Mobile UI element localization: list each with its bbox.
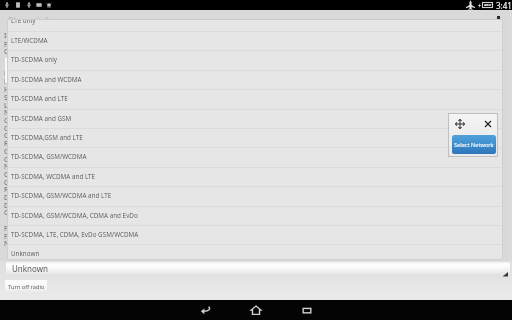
staticText: TD-SCDMA and WCDMA (11, 75, 82, 84)
button[interactable]: Close (483, 119, 493, 129)
staticText: GSM cell (4, 155, 33, 165)
button[interactable]: Move panel (455, 119, 465, 129)
staticText: Ping IPv4 (4, 69, 35, 79)
button[interactable]: Home (248, 304, 264, 317)
staticText: TD-SCDMA, WCDMA and LTE (11, 172, 96, 181)
button[interactable]: TD-SCDMA, GSM/WCDMA, CDMA and EvDo (8, 206, 502, 225)
staticText: Location (4, 101, 33, 111)
staticText: CDMA EvDo (4, 170, 43, 180)
staticText: LTE/WCDMA (11, 36, 48, 45)
staticText: TD-SCDMA, GSM/WCDMA and LTE (11, 191, 112, 200)
button[interactable]: TD-SCDMA,GSM and LTE (8, 128, 502, 147)
staticText: Phone info (8, 14, 54, 26)
staticText: LTE only (11, 20, 36, 25)
staticText: Unknown (11, 249, 40, 258)
staticText: TD-SCDMA and GSM (11, 114, 72, 123)
staticText: IMEI (4, 31, 19, 41)
button[interactable]: TD-SCDMA, LTE, CDMA, EvDo GSM/WCDMA (8, 225, 502, 244)
staticText: TD-SCDMA, GSM/WCDMA, CDMA and EvDo (11, 211, 138, 220)
button[interactable]: TD-SCDMA and LTE (8, 89, 502, 108)
button[interactable]: TD-SCDMA and WCDMA (8, 70, 502, 89)
staticText: Current (4, 47, 30, 57)
staticText: RRC state (4, 139, 36, 149)
staticText: TD-SCDMA,GSM and LTE (11, 133, 83, 142)
button[interactable]: LTE/WCDMA (8, 31, 502, 50)
staticText: Data network (4, 201, 49, 211)
staticText: Select Network (454, 141, 494, 149)
staticText: Network type (4, 162, 49, 172)
staticText: TD-SCDMA and LTE (11, 94, 68, 103)
staticText: Ping IPv6 (4, 77, 35, 87)
button[interactable]: TD-SCDMA only (8, 50, 502, 69)
button[interactable]: Back (197, 304, 213, 317)
staticText: TD-SCDMA, LTE, CDMA, EvDo GSM/WCDMA (11, 230, 139, 239)
staticText: Turn off radio (8, 283, 45, 291)
button[interactable]: Unknown (6, 262, 510, 274)
staticText: HTTP Client test (4, 85, 57, 95)
staticText: TD-SCDMA only (11, 55, 58, 64)
button[interactable]: TD-SCDMA, GSM/WCDMA and LTE (8, 186, 502, 205)
staticText: Smsc (4, 93, 22, 103)
staticText: Neighboring (4, 108, 46, 118)
button[interactable]: TD-SCDMA, WCDMA and LTE (8, 167, 502, 186)
staticText: PPP received (4, 232, 47, 242)
button[interactable]: Recent apps (299, 304, 315, 317)
staticText: CDMA network (4, 116, 54, 126)
staticText: Phone (4, 40, 26, 50)
staticText: Data status (4, 193, 42, 203)
staticText: PPP sent (4, 224, 33, 234)
button[interactable]: Unknown (8, 244, 502, 259)
staticText: Cell info (4, 124, 31, 134)
button[interactable]: Select Network (452, 135, 496, 154)
staticText: CDMA prl (4, 131, 36, 141)
staticText: 3:41 (496, 0, 512, 10)
button[interactable]: TD-SCDMA and GSM (8, 109, 502, 128)
staticText: TD-SCDMA, GSM/WCDMA (11, 152, 87, 161)
button[interactable]: LTE only (8, 20, 502, 30)
staticText: GSM disconnects (4, 147, 61, 157)
staticText: Get PDP list (4, 208, 43, 218)
button[interactable]: TD-SCDMA, GSM/WCDMA (8, 147, 502, 166)
staticText: CDMA sid (4, 178, 36, 188)
staticText: Unknown (12, 263, 48, 274)
button[interactable]: Turn off radio (5, 280, 47, 294)
staticText: Roaming (4, 185, 34, 195)
staticText: Network (4, 239, 33, 249)
